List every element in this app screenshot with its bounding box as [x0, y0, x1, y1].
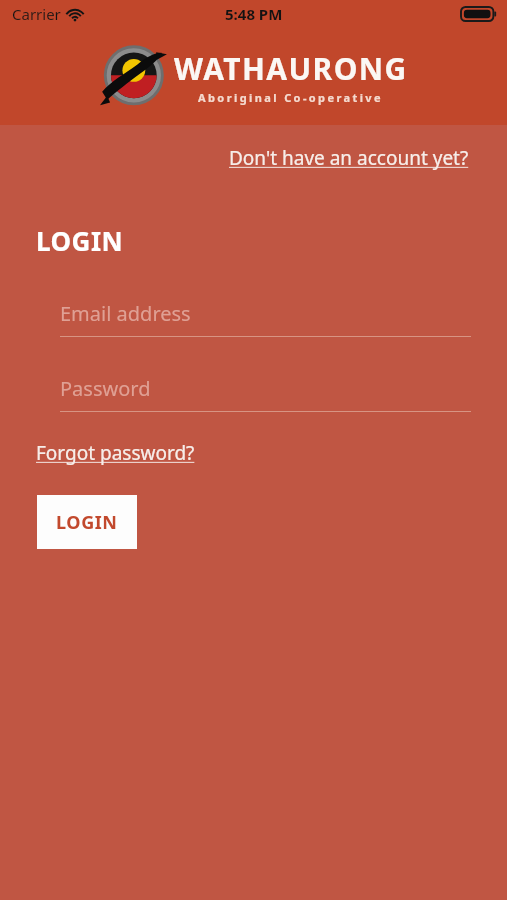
- staticText: Carrier: [12, 4, 61, 24]
- staticText: Don't have an account yet?: [229, 145, 469, 171]
- staticText: Email address: [60, 300, 191, 327]
- staticText: WATHAURONG: [174, 48, 408, 89]
- staticText: Aboriginal Co-operative: [198, 90, 384, 105]
- staticText: 5:48 PM: [225, 4, 283, 24]
- button[interactable]: Don't have an account yet?: [227, 143, 471, 173]
- button[interactable]: LOGIN: [37, 495, 137, 549]
- staticText: LOGIN: [56, 510, 118, 535]
- staticText: Password: [60, 375, 151, 402]
- button[interactable]: Password: [36, 369, 471, 407]
- button[interactable]: Forgot password?: [36, 438, 195, 468]
- staticText: LOGIN: [36, 223, 124, 258]
- button[interactable]: Email address: [36, 294, 471, 332]
- staticText: Forgot password?: [36, 440, 195, 466]
